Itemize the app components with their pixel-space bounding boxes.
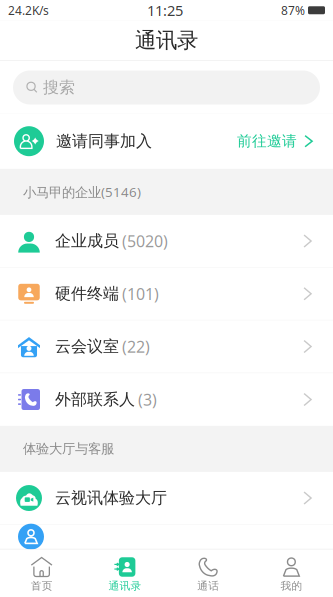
staticText: 邀请同事加入 (56, 131, 152, 151)
staticText: 云视讯体验大厅 (55, 488, 167, 508)
staticText: 通话 (197, 579, 219, 593)
staticText: 外部联系人 (55, 390, 135, 409)
button[interactable]: 外部联系人 (0, 373, 333, 426)
button[interactable]: 云视讯体验大厅 (0, 472, 333, 525)
button[interactable]: 我的 (250, 549, 333, 597)
staticText: 搜索 (43, 78, 75, 97)
button[interactable]: 首页 (0, 549, 83, 597)
staticText: 87% (281, 2, 305, 18)
button[interactable]: 通讯录 (83, 549, 166, 597)
staticText: (3) (138, 389, 157, 410)
button[interactable]: 企业成员 (0, 215, 333, 268)
staticText: 我的 (280, 579, 302, 593)
staticText: 硬件终端 (55, 284, 119, 304)
staticText: 体验大厅与客服 (23, 441, 114, 457)
staticText: 通讯录 (108, 579, 141, 593)
staticText: 首页 (31, 579, 53, 593)
staticText: 前往邀请 (237, 132, 297, 150)
staticText: (5020) (122, 230, 168, 252)
button[interactable]: 硬件终端 (0, 268, 333, 320)
staticText: 通讯录 (135, 27, 198, 54)
button[interactable]: 通话 (166, 549, 250, 597)
button[interactable]: 邀请同事加入 (0, 113, 333, 169)
staticText: 企业成员 (55, 231, 119, 251)
staticText: 云会议室 (55, 337, 119, 356)
staticText: 小马甲的企业(5146) (23, 183, 141, 201)
button[interactable]: 云会议室 (0, 320, 333, 373)
staticText: (101) (122, 283, 159, 304)
staticText: 11:25 (147, 0, 183, 20)
staticText: (22) (122, 336, 150, 357)
staticText: 24.2K/s (8, 2, 49, 18)
